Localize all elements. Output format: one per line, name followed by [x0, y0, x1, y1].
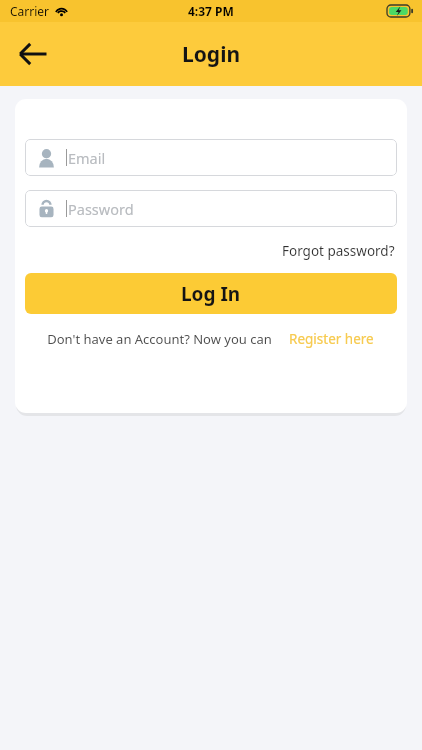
- staticText: Log In: [181, 281, 241, 307]
- staticText: Password: [68, 199, 134, 219]
- button[interactable]: Password: [25, 190, 397, 227]
- staticText: Email: [68, 148, 106, 168]
- button[interactable]: Register here: [288, 328, 375, 350]
- staticText: 4:37 PM: [188, 3, 234, 19]
- button[interactable]: Forgot password?: [280, 240, 397, 262]
- staticText: Don't have an Account? Now you can: [47, 330, 272, 348]
- staticText: Register here: [289, 330, 374, 348]
- button[interactable]: Email: [25, 139, 397, 176]
- staticText: Carrier: [10, 3, 50, 19]
- staticText: Login: [182, 40, 241, 69]
- button[interactable]: Back: [10, 31, 56, 77]
- staticText: Forgot password?: [282, 242, 395, 260]
- button[interactable]: Log In: [25, 273, 397, 314]
